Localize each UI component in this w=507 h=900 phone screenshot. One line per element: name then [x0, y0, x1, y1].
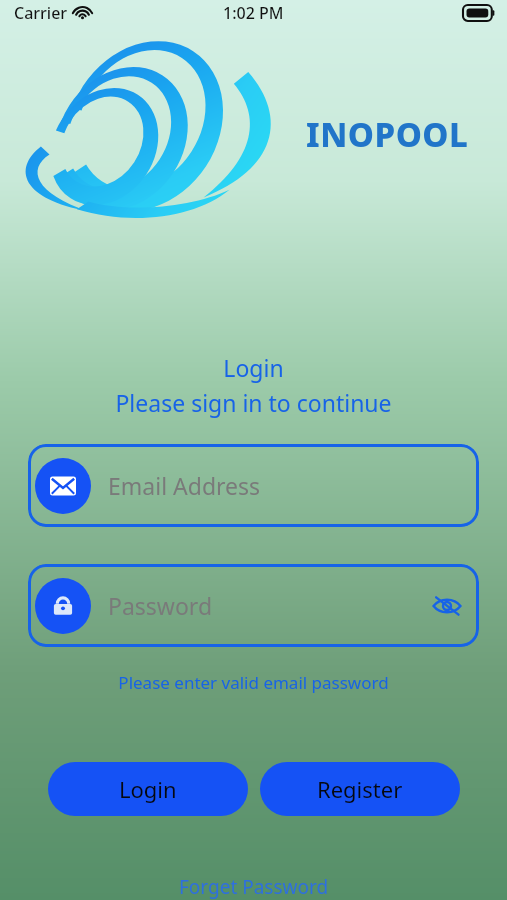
staticText: Email Address [108, 470, 261, 501]
button[interactable]: Show password [425, 584, 469, 628]
staticText: Please sign in to continue [115, 387, 392, 418]
button[interactable]: Forget Password [169, 872, 339, 900]
button[interactable]: Login [48, 762, 248, 816]
button[interactable]: Password [28, 564, 479, 647]
staticText: Login [119, 774, 177, 804]
staticText: Login [223, 352, 284, 383]
staticText: 1:02 PM [223, 2, 284, 24]
staticText: Register [317, 774, 403, 804]
staticText: Forget Password [179, 874, 329, 900]
button[interactable]: Email Address [28, 444, 479, 527]
staticText: Carrier [14, 2, 68, 24]
staticText: INOPOOL [306, 112, 469, 157]
staticText: Password [108, 590, 213, 621]
button[interactable]: Register [260, 762, 460, 816]
staticText: Please enter valid email password [118, 671, 389, 694]
